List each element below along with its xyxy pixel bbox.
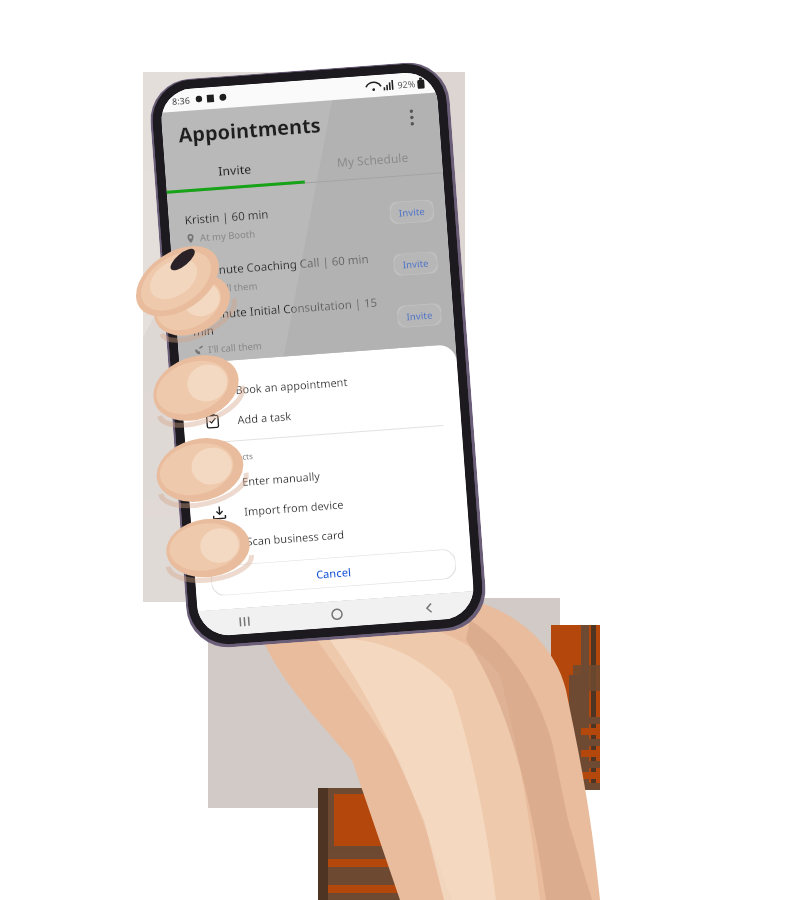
- staticText: Invite: [218, 160, 252, 179]
- button[interactable]: Cancel: [210, 548, 457, 596]
- button[interactable]: 60-Minute Coaching Call | 60 min: [171, 235, 451, 307]
- button[interactable]: Recent apps: [197, 605, 292, 637]
- button[interactable]: Import from device: [189, 479, 468, 530]
- staticText: 92%: [397, 77, 416, 90]
- staticText: Invite: [402, 257, 429, 272]
- button[interactable]: Back: [382, 591, 476, 624]
- staticText: Book an appointment: [235, 374, 349, 397]
- staticText: 60-Minute Coaching Call | 60 min: [188, 251, 370, 280]
- button[interactable]: Scan business card: [191, 509, 470, 560]
- button[interactable]: Enter manually: [187, 450, 466, 500]
- staticText: Invite: [406, 308, 433, 323]
- staticText: Cancel: [315, 564, 351, 582]
- staticText: I'll call them: [203, 279, 258, 296]
- staticText: Add contacts: [204, 450, 254, 465]
- staticText: My Schedule: [336, 149, 409, 170]
- staticText: Invite: [398, 205, 425, 220]
- staticText: Enter manually: [241, 468, 321, 489]
- staticText: I'll call them: [208, 339, 263, 356]
- button[interactable]: Invite: [164, 149, 304, 191]
- button[interactable]: Invite: [393, 251, 438, 276]
- button[interactable]: Invite: [397, 303, 442, 328]
- staticText: Kristin | 60 min: [184, 206, 269, 228]
- button[interactable]: My Schedule: [302, 138, 443, 180]
- button[interactable]: Book an appointment: [180, 358, 459, 408]
- button[interactable]: Invite: [389, 199, 434, 224]
- staticText: At my Booth: [200, 227, 256, 244]
- button[interactable]: More options: [396, 101, 428, 133]
- button[interactable]: Kristin | 60 min: [167, 183, 448, 255]
- button[interactable]: 15-Minute Initial Consultation | 15 min: [175, 287, 455, 359]
- staticText: Add a task: [237, 408, 292, 427]
- button[interactable]: Add a task: [182, 388, 461, 438]
- staticText: Scan business card: [246, 527, 345, 549]
- staticText: 15-Minute Initial Consultation | 15 min: [191, 293, 398, 340]
- staticText: Import from device: [244, 496, 344, 519]
- staticText: Appointments: [177, 111, 322, 149]
- button[interactable]: Home: [290, 598, 384, 631]
- staticText: 8:36: [172, 94, 190, 107]
